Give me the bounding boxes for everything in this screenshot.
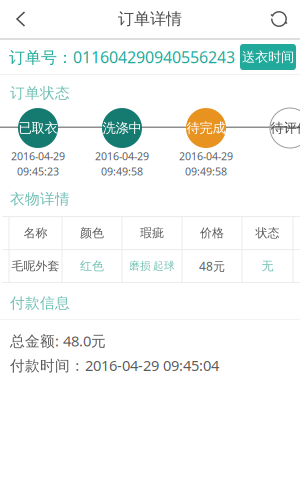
staticText: 送衣时间: [242, 49, 294, 65]
staticText: 衣物详情: [10, 190, 70, 208]
staticText: 待评价: [270, 120, 300, 136]
staticText: 订单号：011604290940556243: [9, 46, 235, 68]
staticText: 已取衣: [18, 120, 57, 136]
staticText: 磨损 起球: [129, 259, 175, 273]
staticText: 价格: [200, 226, 224, 240]
staticText: 待完成: [186, 120, 225, 136]
staticText: 毛呢外套: [11, 259, 59, 273]
staticText: 2016-04-29: [11, 149, 65, 163]
staticText: 09:49:58: [185, 164, 227, 178]
staticText: 2016-04-29: [95, 149, 149, 163]
staticText: 付款时间：2016-04-29 09:45:04: [10, 355, 219, 375]
staticText: 48元: [199, 258, 225, 274]
staticText: 名称: [23, 226, 47, 240]
staticText: 状态: [255, 226, 279, 240]
staticText: 订单详情: [118, 9, 182, 29]
staticText: 红色: [80, 259, 104, 273]
staticText: 无: [261, 259, 273, 273]
staticText: 订单状态: [10, 84, 70, 102]
staticText: 总金额: 48.0元: [10, 331, 106, 350]
button[interactable]: Refresh: [258, 0, 300, 38]
staticText: 2016-04-29: [179, 149, 233, 163]
button[interactable]: 送衣时间: [240, 44, 296, 70]
staticText: 09:49:58: [101, 164, 143, 178]
staticText: 付款信息: [10, 294, 70, 312]
staticText: 洗涤中: [102, 120, 141, 136]
staticText: 瑕疵: [140, 226, 164, 240]
button[interactable]: Back: [0, 0, 42, 38]
staticText: 颜色: [80, 226, 104, 240]
staticText: 09:45:23: [17, 164, 59, 178]
